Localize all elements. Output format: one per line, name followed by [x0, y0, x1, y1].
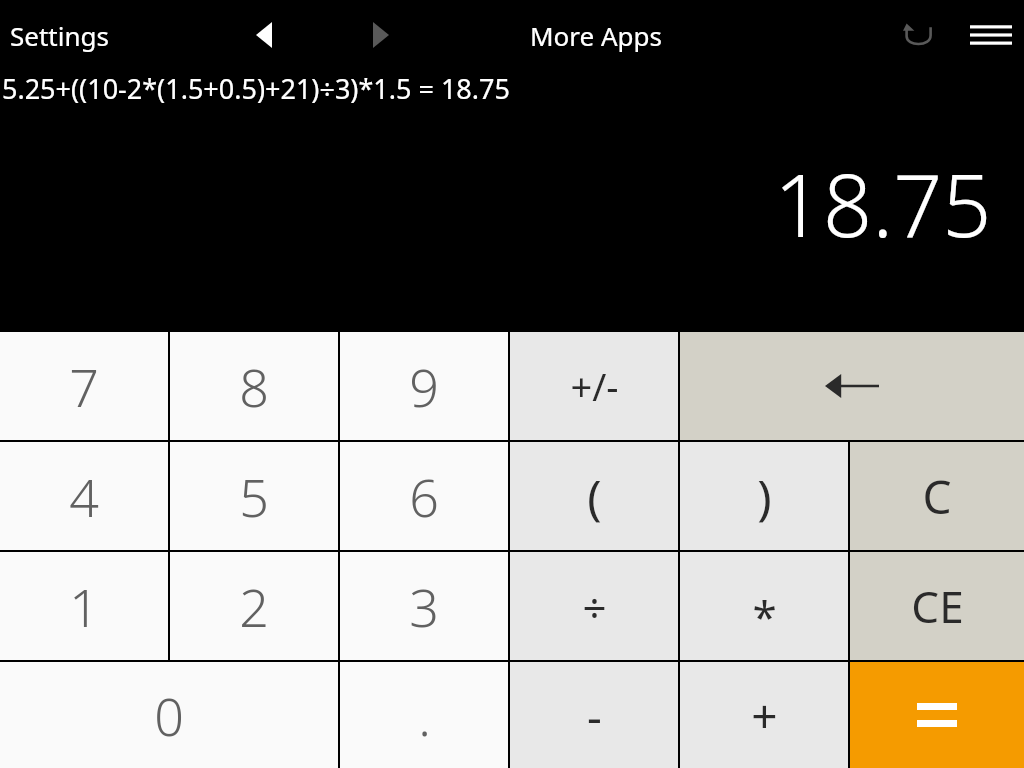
staticText: *	[752, 586, 777, 646]
button[interactable]: 4	[0, 442, 168, 550]
button[interactable]: Next	[355, 0, 407, 70]
button[interactable]: *	[680, 552, 848, 660]
button[interactable]: Previous	[238, 0, 290, 70]
staticText: CE	[911, 576, 964, 636]
button[interactable]: 5	[170, 442, 338, 550]
staticText: 2	[239, 571, 269, 642]
staticText: More Apps	[530, 18, 663, 53]
staticText: -	[587, 684, 602, 747]
staticText: 1	[69, 571, 99, 642]
staticText: +	[751, 684, 778, 747]
button[interactable]: +/-	[510, 332, 678, 440]
button[interactable]: Undo	[890, 0, 946, 70]
button[interactable]: ÷	[510, 552, 678, 660]
button[interactable]: 1	[0, 552, 168, 660]
staticText: 0	[154, 680, 184, 751]
staticText: 4	[69, 461, 99, 532]
button[interactable]: CE	[850, 552, 1024, 660]
button[interactable]: 0	[0, 662, 338, 768]
staticText: (	[587, 464, 602, 529]
staticText: ÷	[582, 578, 607, 635]
button[interactable]: )	[680, 442, 848, 550]
button[interactable]: 3	[340, 552, 508, 660]
button[interactable]: Menu	[958, 0, 1024, 70]
button[interactable]: 6	[340, 442, 508, 550]
staticText: 3	[409, 571, 439, 642]
button[interactable]: Equals	[850, 662, 1024, 768]
staticText: +/-	[570, 360, 619, 412]
button[interactable]: (	[510, 442, 678, 550]
button[interactable]: .	[340, 662, 508, 768]
button[interactable]: Settings	[0, 10, 119, 61]
staticText: 5	[239, 461, 269, 532]
button[interactable]: C	[850, 442, 1024, 550]
staticText: 9	[409, 351, 439, 422]
button[interactable]: 9	[340, 332, 508, 440]
button[interactable]: -	[510, 662, 678, 768]
staticText: 7	[69, 351, 99, 422]
staticText: 8	[239, 351, 269, 422]
staticText: 5.25+((10-2*(1.5+0.5)+21)÷3)*1.5 = 18.75	[2, 70, 510, 107]
staticText: 18.75	[774, 145, 992, 262]
button[interactable]: 7	[0, 332, 168, 440]
staticText: Settings	[10, 18, 109, 53]
staticText: )	[757, 464, 772, 529]
button[interactable]: Backspace	[680, 332, 1024, 440]
button[interactable]: 2	[170, 552, 338, 660]
button[interactable]: 8	[170, 332, 338, 440]
button[interactable]: +	[680, 662, 848, 768]
staticText: .	[418, 680, 431, 751]
button[interactable]: More Apps	[520, 0, 673, 70]
staticText: 6	[409, 461, 439, 532]
staticText: C	[922, 465, 952, 528]
